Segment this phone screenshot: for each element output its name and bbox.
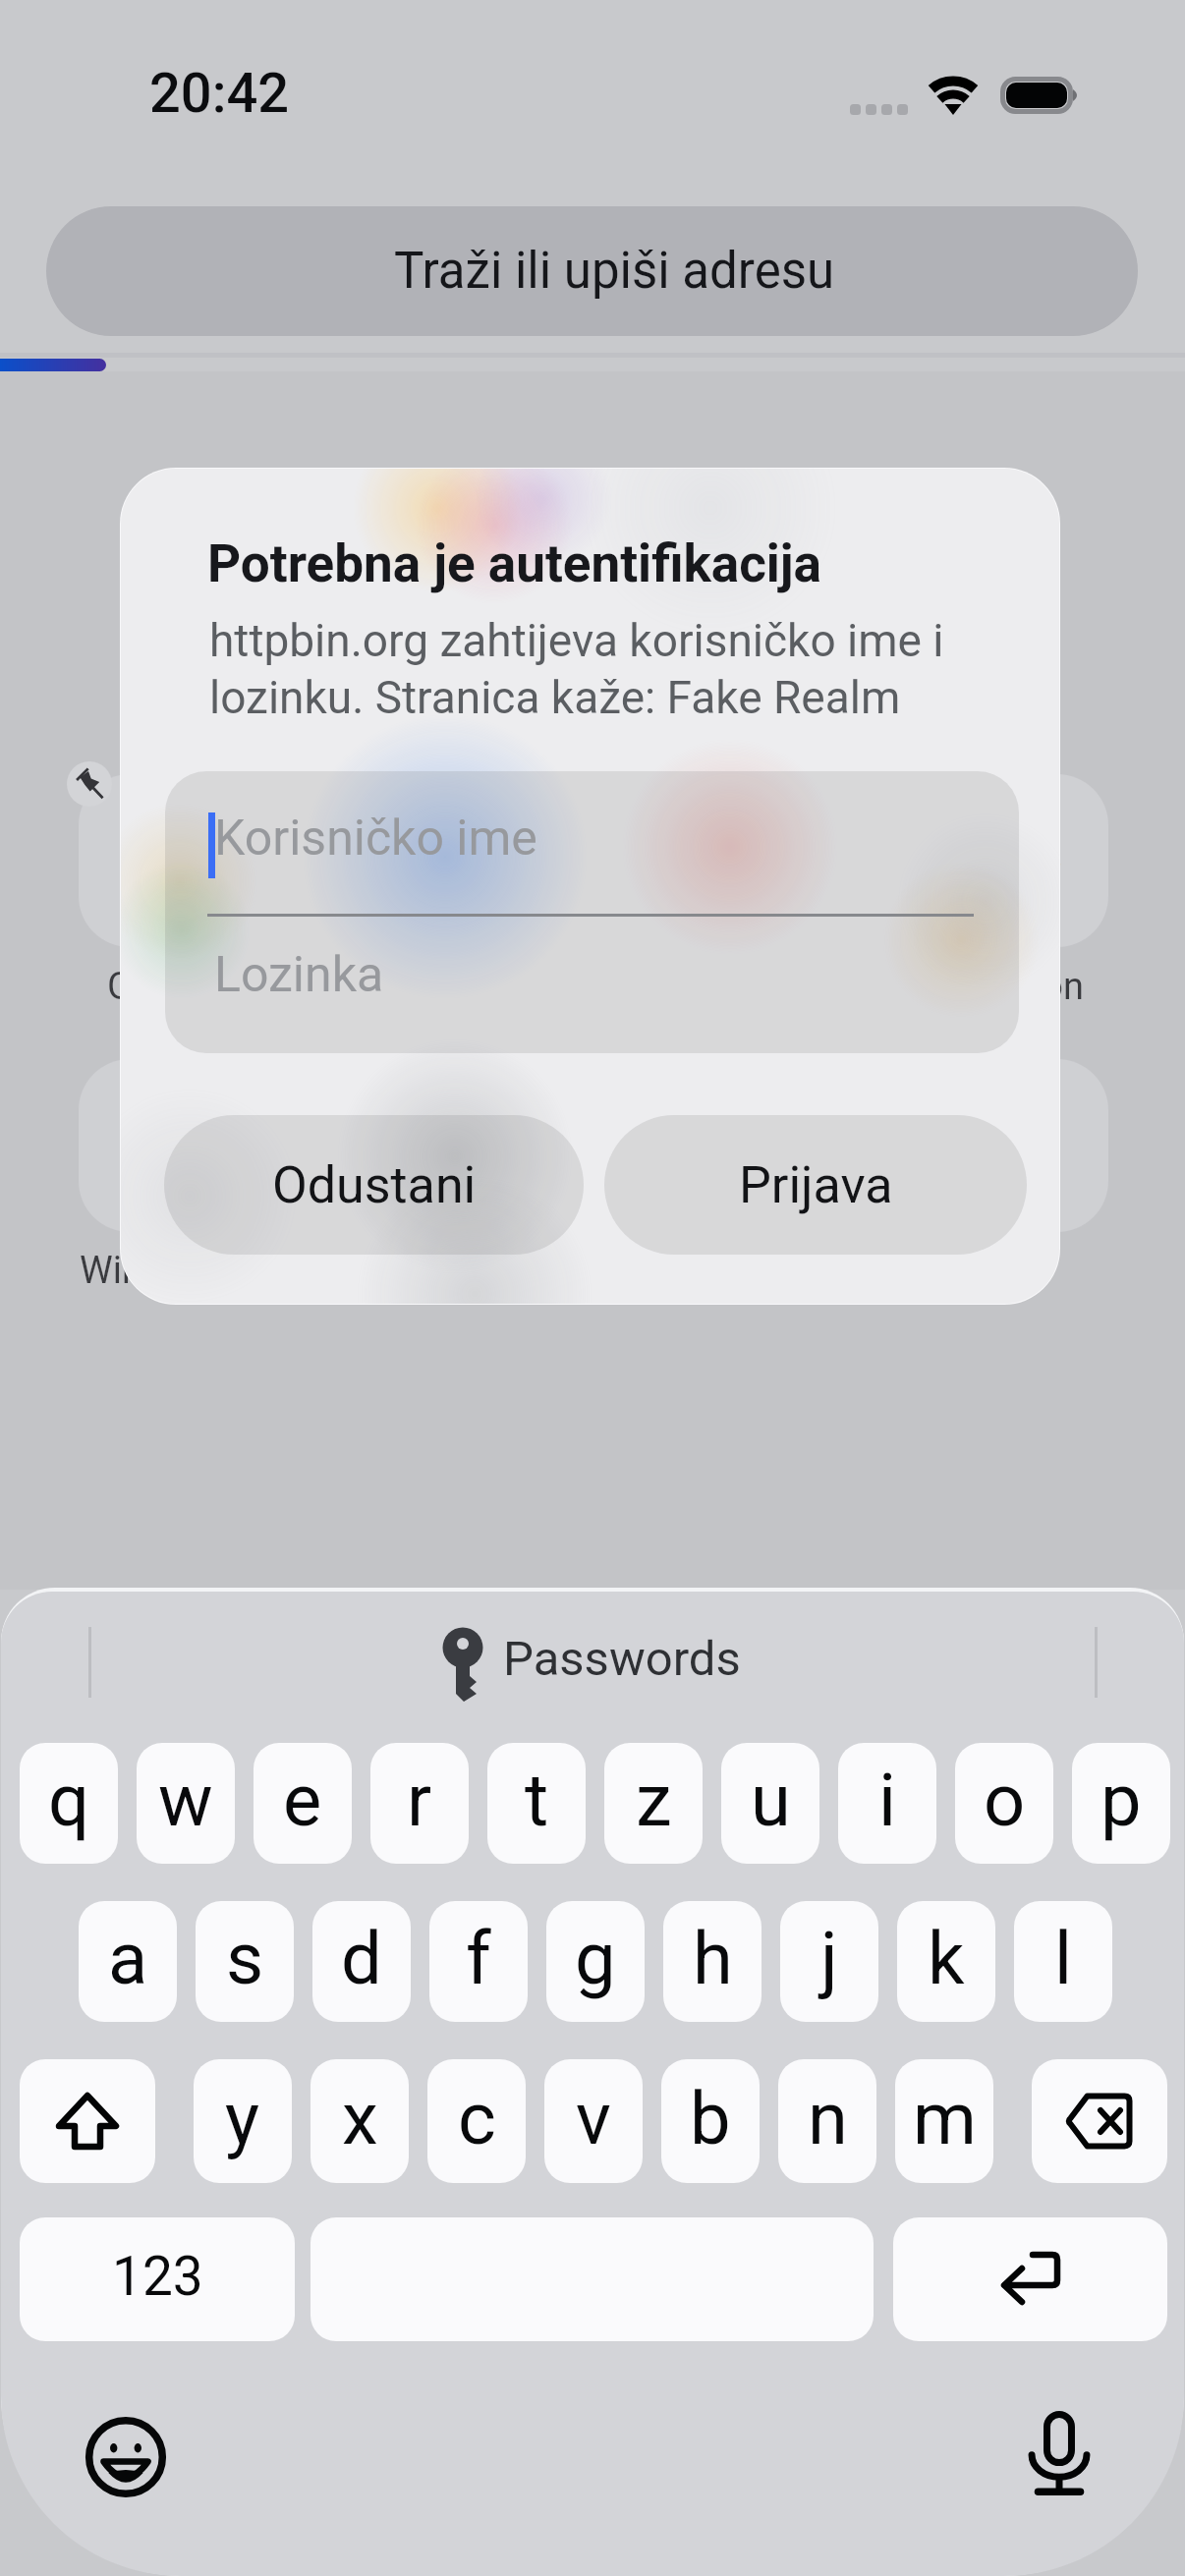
button[interactable]: r	[370, 1743, 469, 1864]
button[interactable]: Enter	[893, 2217, 1167, 2341]
staticText: y	[225, 2076, 260, 2161]
staticText: e	[283, 1758, 322, 1843]
button[interactable]	[79, 774, 252, 947]
staticText: b	[690, 2076, 731, 2161]
button[interactable]: c	[427, 2059, 526, 2183]
button[interactable]: Voice input	[1010, 2405, 1108, 2503]
staticText: x	[342, 2076, 378, 2161]
staticText: Odustani	[272, 1155, 477, 1215]
staticText: w	[158, 1758, 213, 1843]
staticText: v	[576, 2076, 611, 2161]
button[interactable]	[507, 1059, 680, 1232]
button[interactable]: Pinned	[67, 761, 112, 807]
button[interactable]	[935, 1059, 1108, 1232]
staticText: d	[341, 1916, 382, 2001]
staticText: h	[693, 1916, 733, 2001]
button[interactable]: z	[604, 1743, 703, 1864]
staticText: p	[1100, 1758, 1142, 1843]
staticText: g	[575, 1916, 616, 2001]
button[interactable]: i	[838, 1743, 936, 1864]
button[interactable]: g	[546, 1901, 645, 2022]
staticText: Passwords	[503, 1631, 741, 1687]
button[interactable]: q	[20, 1743, 118, 1864]
staticText: Amazon	[946, 965, 1084, 1009]
staticText: httpbin.org zahtijeva korisničko ime i l…	[209, 614, 944, 724]
button[interactable]: p	[1072, 1743, 1170, 1864]
button[interactable]	[79, 1059, 252, 1232]
button[interactable]: m	[895, 2059, 993, 2183]
staticText: n	[808, 2076, 848, 2161]
button[interactable]: 123	[20, 2217, 295, 2341]
button[interactable]: Space	[310, 2217, 874, 2341]
button[interactable]: s	[196, 1901, 294, 2022]
staticText: 20:42	[149, 61, 290, 126]
button[interactable]: Traži ili upiši adresu	[46, 206, 1138, 336]
button[interactable]	[721, 774, 894, 947]
button[interactable]: Emoji	[77, 2408, 175, 2506]
staticText: 123	[112, 2245, 203, 2308]
staticText: q	[48, 1758, 90, 1843]
button[interactable]: l	[1014, 1901, 1112, 2022]
button[interactable]: k	[897, 1901, 995, 2022]
staticText: Wikipedija	[80, 1249, 251, 1293]
button[interactable]: e	[254, 1743, 352, 1864]
button[interactable]: b	[661, 2059, 760, 2183]
button[interactable]: f	[429, 1901, 528, 2022]
button[interactable]: h	[663, 1901, 762, 2022]
button[interactable]: a	[79, 1901, 177, 2022]
button[interactable]	[507, 774, 680, 947]
staticText: i	[878, 1758, 896, 1843]
button[interactable]: Prijava	[604, 1115, 1027, 1255]
button[interactable]	[293, 774, 466, 947]
staticText: Potrebna je autentifikacija	[207, 533, 821, 594]
button[interactable]: t	[487, 1743, 586, 1864]
staticText: o	[984, 1758, 1026, 1843]
staticText: k	[928, 1916, 965, 2001]
button[interactable]: o	[955, 1743, 1053, 1864]
button[interactable]	[293, 1059, 466, 1232]
button[interactable]: x	[310, 2059, 409, 2183]
button[interactable]	[935, 774, 1108, 947]
staticText: z	[636, 1758, 672, 1843]
staticText: u	[751, 1758, 791, 1843]
staticText: r	[407, 1758, 432, 1843]
button[interactable]: d	[312, 1901, 411, 2022]
button[interactable]: Odustani	[164, 1115, 584, 1255]
staticText: t	[525, 1758, 549, 1843]
staticText: s	[226, 1916, 264, 2001]
button[interactable]: u	[721, 1743, 819, 1864]
button[interactable]	[721, 1059, 894, 1232]
staticText: Traži ili upiši adresu	[394, 242, 835, 301]
staticText: f	[466, 1916, 491, 2001]
staticText: m	[913, 2076, 977, 2161]
staticText: j	[820, 1916, 838, 2001]
staticText: l	[1054, 1916, 1072, 2001]
button[interactable]: Backspace	[1032, 2059, 1167, 2183]
button[interactable]: v	[544, 2059, 643, 2183]
staticText: Prijava	[739, 1155, 893, 1215]
button[interactable]: w	[137, 1743, 235, 1864]
button[interactable]: Shift	[20, 2059, 155, 2183]
staticText: a	[108, 1916, 148, 2001]
button[interactable]: n	[778, 2059, 876, 2183]
staticText: Lozinka	[214, 946, 384, 1004]
staticText: c	[458, 2076, 496, 2161]
staticText: Google	[107, 965, 225, 1009]
button[interactable]: y	[194, 2059, 292, 2183]
button[interactable]: j	[780, 1901, 878, 2022]
staticText: Korisničko ime	[214, 810, 537, 868]
